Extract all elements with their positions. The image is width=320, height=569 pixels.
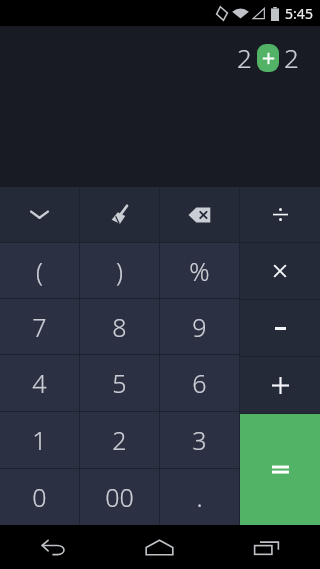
staticText: 1 bbox=[32, 423, 47, 457]
staticText: 5 bbox=[112, 366, 127, 400]
button[interactable]: 9 bbox=[160, 299, 239, 354]
button[interactable]: 3 bbox=[160, 412, 239, 468]
staticText: 9 bbox=[192, 310, 207, 344]
button[interactable]: ( bbox=[0, 243, 79, 298]
button[interactable]: Minus bbox=[240, 300, 320, 356]
staticText: 00 bbox=[105, 480, 134, 514]
staticText: 0 bbox=[32, 480, 47, 514]
button[interactable]: 7 bbox=[0, 299, 79, 354]
button[interactable]: 6 bbox=[160, 355, 239, 411]
button[interactable]: Collapse bbox=[0, 187, 79, 242]
staticText: 6 bbox=[192, 366, 207, 400]
staticText: % bbox=[189, 254, 210, 288]
button[interactable]: Divide bbox=[240, 187, 320, 242]
button[interactable]: 2 bbox=[80, 412, 159, 468]
button[interactable]: 0 bbox=[0, 469, 79, 525]
button[interactable]: ) bbox=[80, 243, 159, 298]
staticText: ( bbox=[36, 254, 43, 288]
button[interactable]: Back bbox=[0, 525, 106, 569]
staticText: . bbox=[196, 480, 203, 514]
staticText: ) bbox=[116, 254, 123, 288]
button[interactable]: Multiply bbox=[240, 243, 320, 299]
staticText: 2 bbox=[112, 423, 127, 457]
button[interactable]: Home bbox=[106, 525, 213, 569]
button[interactable]: 1 bbox=[0, 412, 79, 468]
button[interactable]: Plus bbox=[240, 357, 320, 413]
button[interactable]: 00 bbox=[80, 469, 159, 525]
button[interactable]: 5 bbox=[80, 355, 159, 411]
staticText: 2 bbox=[284, 40, 299, 75]
button[interactable]: Clear bbox=[80, 187, 159, 242]
button[interactable]: . bbox=[160, 469, 239, 525]
staticText: 7 bbox=[32, 310, 47, 344]
button[interactable]: Recents bbox=[213, 525, 320, 569]
button[interactable]: 8 bbox=[80, 299, 159, 354]
button[interactable]: 4 bbox=[0, 355, 79, 411]
staticText: 3 bbox=[192, 423, 207, 457]
staticText: 8 bbox=[112, 310, 127, 344]
staticText: 2 bbox=[237, 40, 252, 75]
staticText: 5:45 bbox=[285, 4, 313, 23]
button[interactable]: Backspace bbox=[160, 187, 239, 242]
button[interactable]: Equals bbox=[240, 414, 320, 525]
staticText: 4 bbox=[32, 366, 47, 400]
button[interactable]: % bbox=[160, 243, 239, 298]
